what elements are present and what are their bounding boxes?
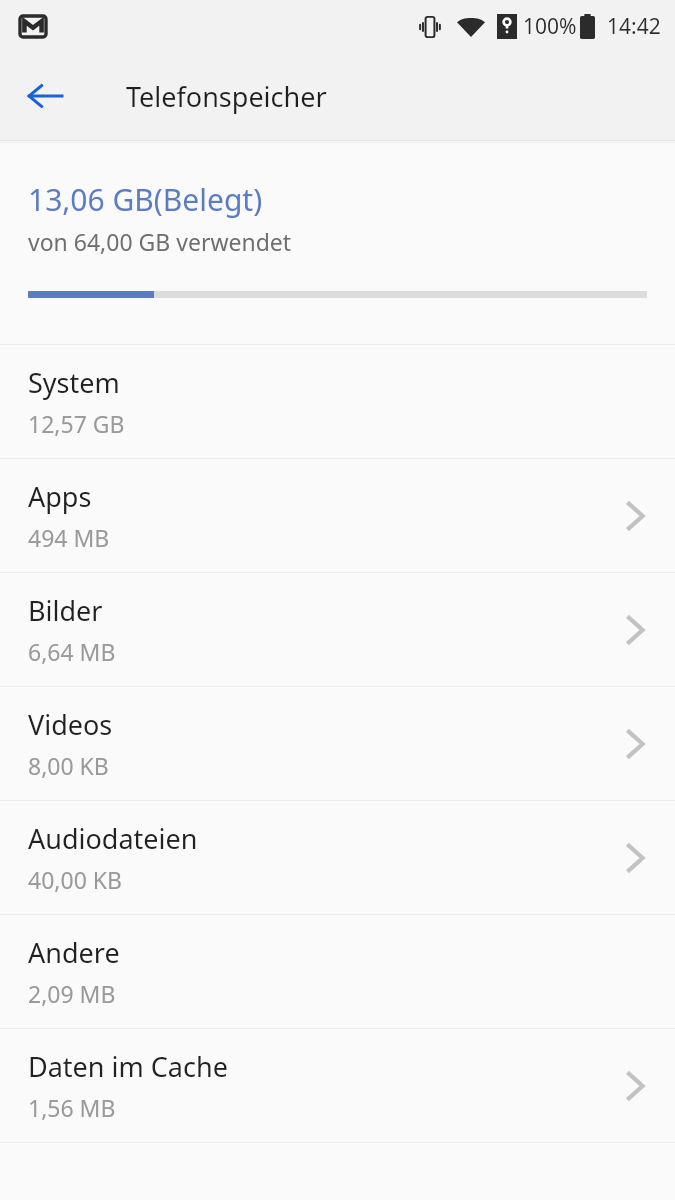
staticText: von 64,00 GB verwendet bbox=[28, 226, 292, 257]
staticText: 8,00 KB bbox=[28, 750, 109, 781]
staticText: 14:42 bbox=[607, 12, 661, 41]
staticText: Andere bbox=[28, 934, 120, 971]
button[interactable]: Videos bbox=[0, 687, 675, 800]
button[interactable]: Zurück bbox=[14, 65, 76, 127]
staticText: 13,06 GB(Belegt) bbox=[28, 179, 263, 220]
staticText: Audiodateien bbox=[28, 820, 198, 857]
staticText: Telefonspeicher bbox=[126, 78, 327, 115]
staticText: Daten im Cache bbox=[28, 1048, 228, 1085]
staticText: 6,64 MB bbox=[28, 636, 116, 667]
staticText: 12,57 GB bbox=[28, 408, 125, 439]
staticText: 40,00 KB bbox=[28, 864, 122, 895]
button[interactable]: System bbox=[0, 345, 675, 458]
button[interactable]: Andere bbox=[0, 915, 675, 1028]
staticText: 100% bbox=[523, 12, 577, 41]
button[interactable]: Audiodateien bbox=[0, 801, 675, 914]
staticText: 2,09 MB bbox=[28, 978, 116, 1009]
staticText: 1,56 MB bbox=[28, 1092, 116, 1123]
staticText: Apps bbox=[28, 478, 92, 515]
button[interactable]: Apps bbox=[0, 459, 675, 572]
staticText: Bilder bbox=[28, 592, 103, 629]
staticText: 494 MB bbox=[28, 522, 110, 553]
button[interactable]: Daten im Cache bbox=[0, 1029, 675, 1142]
staticText: System bbox=[28, 364, 120, 401]
button[interactable]: Bilder bbox=[0, 573, 675, 686]
staticText: Videos bbox=[28, 706, 113, 743]
